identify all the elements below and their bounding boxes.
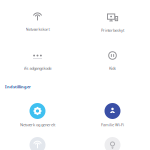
button[interactable]: Netværkskort (0, 0, 75, 38)
button[interactable]: Vis adgangskode (0, 38, 75, 76)
staticText: Printerbeskyt (101, 27, 124, 33)
staticText: Indstillinger (5, 84, 31, 89)
button[interactable] (75, 131, 150, 150)
staticText: Familie Wi-Fi (101, 122, 124, 127)
staticText: Vis adgangskode (23, 65, 51, 71)
button[interactable]: Netværk og generelt (0, 97, 75, 131)
button[interactable]: Printerbeskyt (75, 0, 150, 38)
staticText: Kids (109, 65, 116, 71)
staticText: Netværk og generelt (20, 122, 55, 127)
button[interactable]: Familie Wi-Fi (75, 97, 150, 131)
button[interactable]: Kids (75, 38, 150, 76)
staticText: Netværkskort (25, 26, 49, 32)
button[interactable] (0, 131, 75, 150)
